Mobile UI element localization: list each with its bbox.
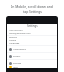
- staticText: Privacy: [13, 55, 21, 58]
- button[interactable]: Your account: [7, 29, 57, 32]
- staticText: name@example.com: [9, 32, 31, 35]
- staticText: Language: [9, 42, 20, 45]
- staticText: Theme: [9, 39, 17, 42]
- staticText: tap Settings: [23, 9, 42, 14]
- staticText: Your account: [9, 29, 23, 32]
- button[interactable]: Language: [7, 42, 57, 45]
- button[interactable]: name@example.com: [7, 32, 57, 35]
- button[interactable]: Privacy: [9, 53, 57, 59]
- staticText: Help: [13, 66, 18, 68]
- button[interactable]: Theme: [7, 39, 57, 42]
- staticText: Settings: [27, 24, 38, 28]
- staticText: General: [9, 36, 18, 39]
- button[interactable]: General: [7, 36, 57, 39]
- button[interactable]: Settings: [7, 24, 57, 28]
- button[interactable]: Storage: [9, 60, 57, 66]
- staticText: Notifications: [13, 48, 27, 51]
- staticText: In Mobile, scroll down and: [11, 4, 53, 9]
- button[interactable]: Notifications: [9, 46, 57, 52]
- staticText: Storage: [13, 62, 21, 65]
- button[interactable]: Help: [9, 66, 57, 68]
